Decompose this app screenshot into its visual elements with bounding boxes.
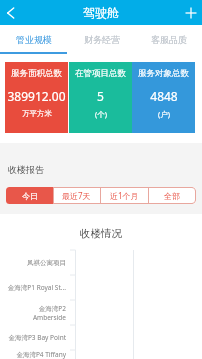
- staticText: 财务经营: [84, 34, 120, 45]
- staticText: 万平方米: [22, 109, 52, 118]
- staticText: 在管项目总数: [75, 68, 126, 79]
- staticText: 服务对象总数: [138, 68, 189, 79]
- staticText: 收楼报告: [8, 164, 44, 175]
- button[interactable]: 全部: [148, 187, 196, 204]
- staticText: 服务面积总数: [11, 68, 62, 79]
- staticText: 4848: [150, 88, 178, 104]
- button[interactable]: 客服品质: [135, 25, 202, 54]
- button[interactable]: Back: [0, 1, 24, 25]
- button[interactable]: Add: [179, 1, 202, 24]
- staticText: (户): [158, 109, 170, 119]
- button[interactable]: 在管项目总数: [69, 62, 132, 133]
- staticText: 最近7天: [62, 190, 91, 201]
- staticText: 金海湾P4 Tiffany: [16, 350, 66, 359]
- button[interactable]: 管业规模: [0, 25, 68, 54]
- staticText: (个): [95, 109, 107, 119]
- staticText: 金海湾P2 Amberside: [32, 304, 66, 322]
- staticText: 收楼情况: [80, 227, 122, 240]
- button[interactable]: 财务经营: [68, 25, 135, 54]
- staticText: 近1个月: [110, 190, 139, 201]
- button[interactable]: 服务面积总数: [5, 62, 68, 133]
- staticText: 客服品质: [151, 34, 187, 45]
- button[interactable]: 近1个月: [100, 187, 148, 204]
- button[interactable]: 今日: [6, 187, 53, 204]
- button[interactable]: 服务对象总数: [132, 62, 195, 133]
- staticText: 金海湾P1 Royal St...: [7, 283, 66, 292]
- staticText: 389912.00: [7, 88, 66, 104]
- staticText: 驾驶舱: [83, 5, 119, 20]
- staticText: 金海湾P3 Bay Point: [8, 333, 66, 342]
- button[interactable]: 最近7天: [53, 187, 100, 204]
- staticText: 5: [97, 88, 104, 104]
- staticText: 凤祺公寓项目: [27, 259, 66, 267]
- staticText: 管业规模: [16, 34, 52, 45]
- staticText: 全部: [164, 191, 180, 201]
- staticText: 今日: [22, 191, 38, 201]
